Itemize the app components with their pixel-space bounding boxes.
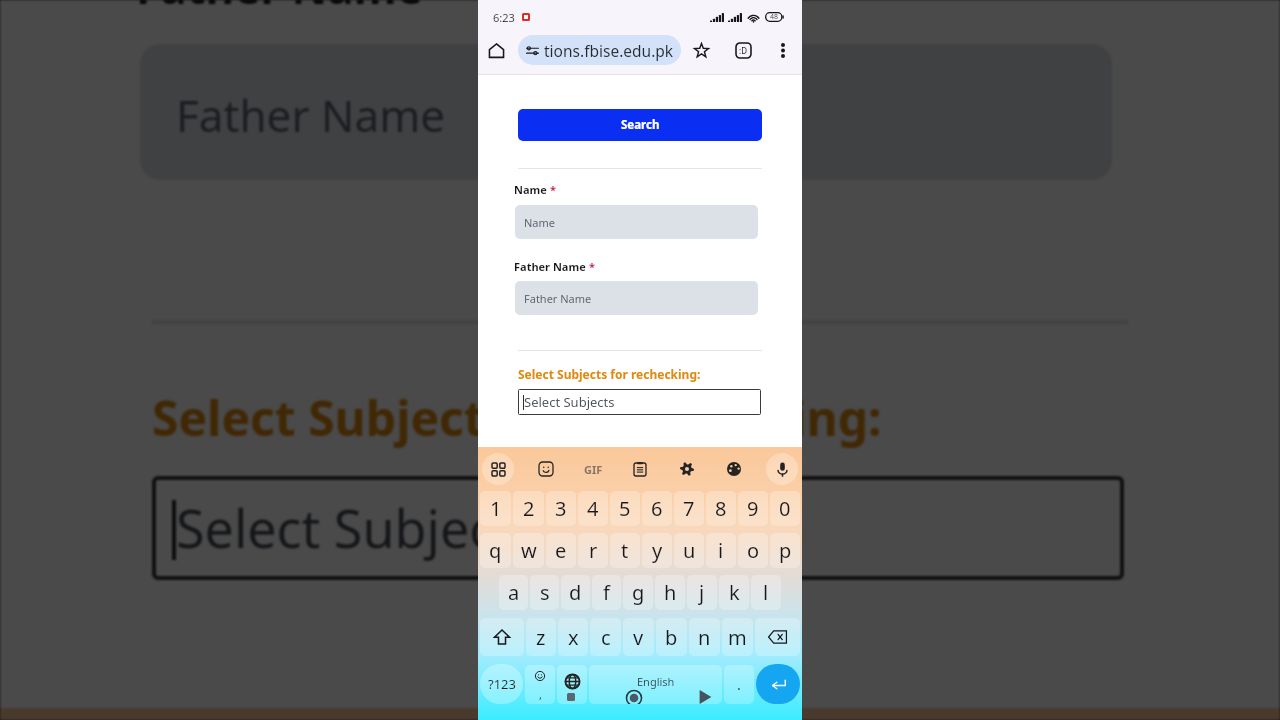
button[interactable]: j: [687, 575, 717, 610]
staticText: Select Subjects for rechecking:: [518, 366, 701, 382]
button[interactable]: x: [558, 618, 588, 656]
button[interactable]: f: [592, 575, 621, 610]
staticText: tions.fbise.edu.pk: [544, 40, 674, 61]
staticText: Select Subjects: [176, 492, 540, 564]
staticText: Father Name: [524, 291, 592, 306]
staticText: w: [521, 537, 537, 564]
button[interactable]: 4: [578, 491, 608, 526]
button[interactable]: [755, 618, 800, 656]
button[interactable]: 5: [610, 491, 640, 526]
button[interactable]: r: [578, 533, 608, 568]
staticText: r: [589, 537, 598, 564]
button[interactable]: Bookmark: [687, 36, 715, 64]
button[interactable]: 6: [642, 491, 672, 526]
button[interactable]: 0: [770, 491, 800, 526]
button[interactable]: Settings: [672, 454, 702, 484]
staticText: Name: [524, 215, 556, 230]
button[interactable]: Voice input: [766, 453, 798, 485]
button[interactable]: k: [719, 575, 749, 610]
button[interactable]: Apps: [482, 453, 514, 485]
staticText: z: [536, 624, 546, 651]
staticText: f: [603, 579, 610, 606]
button[interactable]: 2: [513, 491, 544, 526]
staticText: m: [728, 624, 747, 651]
button[interactable]: h: [655, 575, 685, 610]
button[interactable]: More options: [769, 36, 797, 64]
staticText: GIF: [584, 462, 603, 477]
button[interactable]: Select Subjects: [518, 389, 761, 415]
button[interactable]: c: [590, 618, 621, 656]
button[interactable]: y: [642, 533, 672, 568]
button[interactable]: d: [561, 575, 590, 610]
staticText: 6: [651, 495, 663, 522]
staticText: b: [665, 624, 678, 651]
button[interactable]: o: [738, 533, 768, 568]
button[interactable]: 7: [674, 491, 704, 526]
button[interactable]: GIF: [578, 454, 608, 484]
staticText: 4: [587, 495, 599, 522]
button[interactable]: w: [513, 533, 544, 568]
button[interactable]: b: [656, 618, 687, 656]
staticText: 5: [619, 495, 631, 522]
staticText: 6:23: [493, 10, 515, 25]
button[interactable]: [557, 665, 587, 704]
button[interactable]: .: [724, 665, 754, 704]
button[interactable]: 3: [546, 491, 576, 526]
staticText: x: [568, 624, 579, 651]
button[interactable]: [480, 618, 524, 656]
button[interactable]: t: [610, 533, 640, 568]
button[interactable]: ?123: [480, 664, 523, 704]
staticText: o: [747, 537, 760, 564]
button[interactable]: v: [623, 618, 654, 656]
button[interactable]: s: [530, 575, 559, 610]
button[interactable]: u: [674, 533, 704, 568]
button[interactable]: Search: [518, 109, 762, 141]
staticText: .: [737, 675, 741, 694]
button[interactable]: e: [546, 533, 576, 568]
staticText: l: [763, 579, 769, 606]
staticText: 2: [523, 495, 535, 522]
staticText: n: [698, 624, 711, 651]
button[interactable]: i: [706, 533, 736, 568]
staticText: v: [633, 624, 644, 651]
button[interactable]: Name: [515, 205, 758, 239]
button[interactable]: p: [770, 533, 800, 568]
staticText: 7: [683, 495, 695, 522]
button[interactable]: 1: [480, 491, 511, 526]
button[interactable]: Themes: [719, 454, 749, 484]
button[interactable]: q: [480, 533, 511, 568]
button[interactable]: n: [689, 618, 720, 656]
button[interactable]: g: [623, 575, 653, 610]
staticText: ,: [539, 687, 542, 702]
button[interactable]: Home: [482, 36, 510, 64]
button[interactable]: l: [751, 575, 781, 610]
button[interactable]: Father Name: [515, 281, 758, 315]
button[interactable]: a: [499, 575, 528, 610]
staticText: c: [601, 624, 611, 651]
staticText: Father Name: [514, 259, 586, 274]
button[interactable]: Enter: [756, 664, 800, 704]
button[interactable]: 8: [706, 491, 736, 526]
button[interactable]: z: [526, 618, 556, 656]
button[interactable]: 9: [738, 491, 768, 526]
button[interactable]: Clipboard: [625, 454, 655, 484]
button[interactable]: tions.fbise.edu.pk: [518, 35, 681, 65]
staticText: 3: [555, 495, 567, 522]
staticText: y: [652, 537, 663, 564]
staticText: 48: [770, 12, 779, 22]
button[interactable]: ,: [525, 665, 555, 704]
staticText: h: [664, 579, 677, 606]
staticText: 1: [490, 495, 502, 522]
staticText: *: [589, 259, 595, 274]
button[interactable]: English: [589, 665, 722, 704]
staticText: :D: [739, 45, 748, 56]
staticText: Father Name: [136, 0, 424, 16]
button[interactable]: Father Name: [140, 44, 1112, 180]
staticText: d: [569, 579, 582, 606]
button[interactable]: m: [722, 618, 753, 656]
button[interactable]: Tabs: [729, 36, 757, 64]
staticText: 0: [779, 495, 791, 522]
button[interactable]: Select Subjects: [152, 476, 1124, 580]
staticText: *: [436, 0, 460, 16]
button[interactable]: Stickers: [531, 454, 561, 484]
